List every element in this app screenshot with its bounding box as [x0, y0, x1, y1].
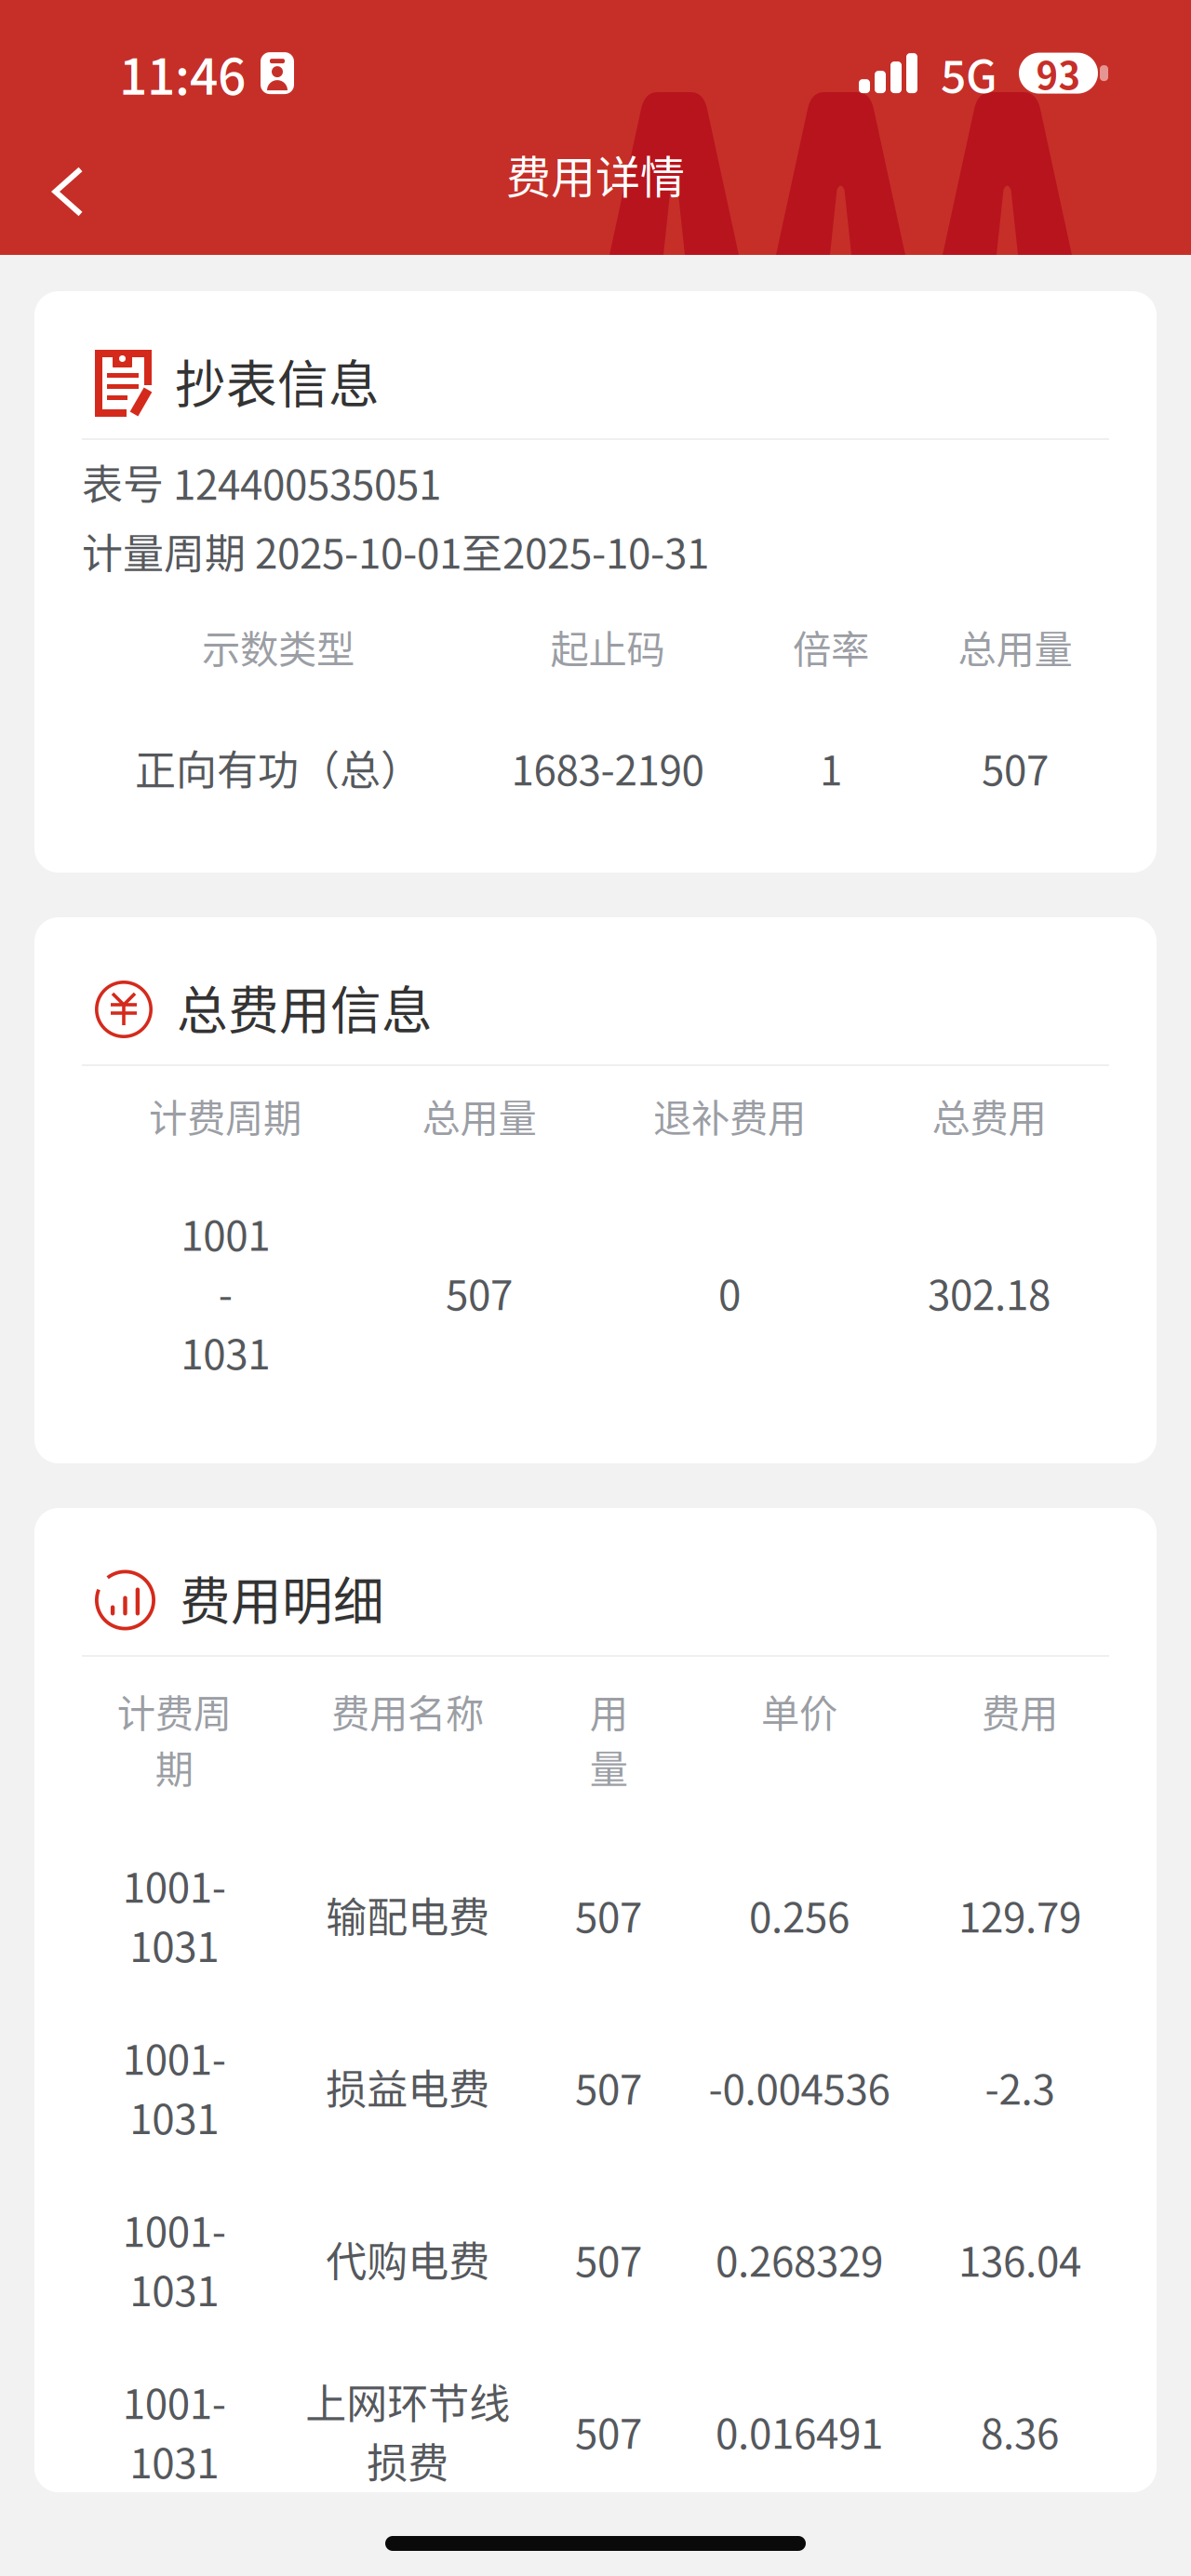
staticText: -2.3: [985, 2057, 1055, 2116]
staticText: 93: [1036, 46, 1081, 100]
staticText: 示数类型: [202, 619, 355, 674]
staticText: 费用名称: [331, 1683, 484, 1739]
staticText: 507: [575, 2057, 642, 2116]
staticText: 1001- 1031: [122, 1855, 226, 1974]
staticText: 总用量: [422, 1088, 536, 1143]
staticText: 退补费用: [653, 1088, 806, 1143]
staticText: 上网环节线 损费: [305, 2372, 510, 2490]
staticText: 0.016491: [716, 2401, 883, 2460]
staticText: 129.79: [958, 1885, 1081, 1944]
staticText: 507: [446, 1263, 513, 1322]
staticText: 0.256: [749, 1885, 850, 1944]
staticText: 费用详情: [506, 142, 685, 206]
staticText: 507: [575, 2401, 642, 2460]
staticText: 总费用: [932, 1088, 1046, 1143]
staticText: -0.004536: [709, 2057, 890, 2116]
staticText: 136.04: [958, 2229, 1081, 2288]
staticText: 费用明细: [180, 1560, 384, 1634]
staticText: 1683-2190: [511, 738, 704, 797]
staticText: 0: [718, 1263, 741, 1322]
staticText: 1001 - 1031: [181, 1203, 270, 1381]
staticText: 正向有功（总）: [135, 738, 422, 797]
staticText: 输配电费: [326, 1885, 489, 1944]
staticText: 倍率: [793, 619, 869, 674]
staticText: 起止码: [550, 619, 665, 674]
staticText: 计费周期: [149, 1088, 301, 1143]
staticText: 总用量: [958, 619, 1072, 674]
staticText: 507: [575, 2229, 642, 2288]
staticText: 0.268329: [716, 2229, 883, 2288]
staticText: 单价: [761, 1683, 837, 1739]
staticText: 5G: [941, 41, 997, 105]
staticText: 1001- 1031: [122, 2027, 226, 2146]
staticText: 1001- 1031: [122, 2200, 226, 2318]
staticText: 计量周期 2025-10-01至2025-10-31: [82, 521, 709, 580]
staticText: 费用: [982, 1683, 1058, 1739]
staticText: 8.36: [981, 2401, 1059, 2460]
staticText: 表号 124400535051: [82, 452, 441, 511]
staticText: 507: [575, 1885, 642, 1944]
staticText: 用 量: [589, 1683, 628, 1794]
button[interactable]: 返回: [0, 136, 116, 233]
staticText: 1: [820, 738, 842, 797]
staticText: 302.18: [928, 1263, 1050, 1322]
staticText: 计费周 期: [117, 1683, 231, 1794]
staticText: 损益电费: [326, 2057, 489, 2116]
staticText: 1001- 1031: [122, 2372, 226, 2490]
staticText: 总费用信息: [177, 970, 433, 1043]
staticText: 507: [982, 738, 1049, 797]
staticText: 抄表信息: [175, 344, 380, 417]
staticText: 11:46: [119, 37, 246, 109]
staticText: 代购电费: [326, 2229, 489, 2288]
